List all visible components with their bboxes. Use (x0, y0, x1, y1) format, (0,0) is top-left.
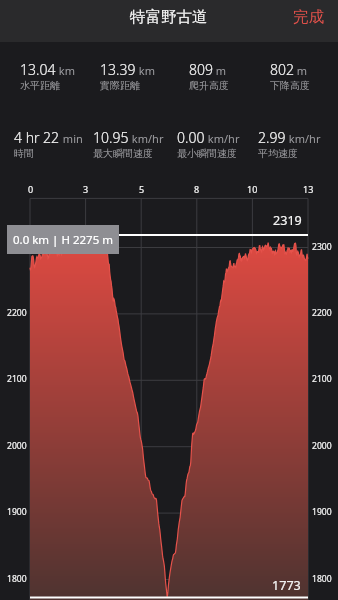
staticText: 10 (247, 183, 258, 195)
staticText: 2200 (312, 307, 332, 319)
staticText: 0 (28, 183, 34, 195)
staticText: m (213, 63, 227, 78)
staticText: 2100 (7, 373, 27, 385)
button[interactable]: 完成 (279, 1, 338, 33)
staticText: 平均速度 (258, 147, 298, 160)
staticText: 2300 (312, 241, 332, 253)
staticText: 2200 (7, 307, 27, 319)
staticText: km/hr (205, 131, 240, 146)
staticText: km/hr (286, 131, 321, 146)
staticText: 4 hr 22 (14, 128, 60, 147)
staticText: 3 (83, 183, 89, 195)
staticText: 爬升高度 (189, 79, 229, 92)
staticText: km/hr (129, 131, 164, 146)
staticText: min (60, 131, 83, 146)
staticText: 特富野古道 (130, 7, 208, 27)
staticText: 10.95 (93, 128, 129, 147)
staticText: 水平距離 (20, 79, 60, 92)
staticText: 1800 (312, 573, 332, 585)
staticText: 1900 (312, 506, 332, 518)
staticText: 下降高度 (270, 79, 310, 92)
staticText: km (56, 63, 76, 78)
staticText: 最小瞬間速度 (177, 147, 237, 160)
staticText: 1900 (7, 506, 27, 518)
staticText: 1800 (7, 573, 27, 585)
staticText: 1773 (272, 577, 301, 594)
staticText: 最大瞬間速度 (93, 147, 153, 160)
staticText: 5 (139, 183, 145, 195)
staticText: 809 (189, 60, 213, 79)
staticText: 0.00 (177, 128, 205, 147)
staticText: 802 (270, 60, 294, 79)
staticText: 8 (194, 183, 200, 195)
staticText: 13.04 (20, 60, 56, 79)
staticText: 13 (303, 183, 314, 195)
staticText: m (294, 63, 308, 78)
staticText: 2300 (7, 241, 27, 253)
staticText: 時間 (14, 147, 34, 160)
staticText: 0.0 km | H 2275 m (13, 232, 114, 248)
staticText: 2100 (312, 373, 332, 385)
staticText: 2319 (273, 212, 302, 229)
staticText: 2.99 (258, 128, 286, 147)
staticText: 2000 (7, 440, 27, 452)
staticText: 完成 (293, 7, 324, 27)
staticText: 13.39 (100, 60, 136, 79)
button[interactable]: 0.0 km | H 2275 m (7, 225, 119, 254)
staticText: 2000 (312, 440, 332, 452)
staticText: km (136, 63, 156, 78)
staticText: 實際距離 (100, 79, 140, 92)
